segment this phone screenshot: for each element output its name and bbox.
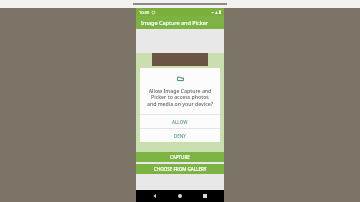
staticText: DENY <box>174 133 186 139</box>
button[interactable]: CHOOSE FROM GALLERY <box>136 164 224 174</box>
button[interactable]: ALLOW <box>140 115 220 128</box>
button[interactable]: Home <box>174 190 186 202</box>
button[interactable]: Recent apps <box>199 190 211 202</box>
button[interactable]: Back <box>149 190 161 202</box>
button[interactable]: CAPTURE <box>136 152 224 162</box>
staticText: Allow Image Capture and Picker to access… <box>146 87 214 108</box>
staticText: ALLOW <box>172 119 188 125</box>
staticText: Image Capture and Picker <box>141 19 209 26</box>
button[interactable]: DENY <box>140 129 220 142</box>
staticText: 10:00 <box>139 10 150 15</box>
staticText: CAPTURE <box>170 154 190 160</box>
button[interactable]: Image Capture and Picker <box>136 16 224 29</box>
staticText: CHOOSE FROM GALLERY <box>154 166 207 172</box>
